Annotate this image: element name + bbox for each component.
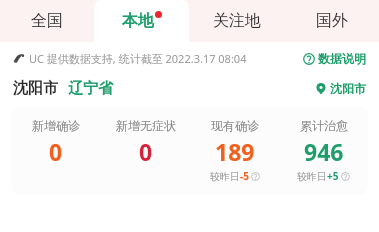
staticText: 沈阳市 — [13, 79, 58, 98]
button[interactable]: 累计治愈 — [279, 118, 368, 183]
staticText: 较昨日+5 — [297, 169, 339, 183]
button[interactable]: 全国 — [0, 0, 94, 42]
staticText: 国外 — [316, 11, 348, 31]
button[interactable]: 新增无症状 — [101, 118, 190, 180]
button[interactable]: 数据说明 — [303, 51, 366, 66]
staticText: 较昨日-5 — [210, 169, 249, 183]
staticText: 累计治愈 — [300, 118, 348, 133]
staticText: 0 — [139, 136, 153, 167]
staticText: 本地 — [122, 11, 154, 31]
staticText: 全国 — [31, 11, 63, 31]
staticText: 关注地 — [213, 11, 261, 31]
staticText: 沈阳市 — [330, 81, 366, 96]
staticText: 189 — [215, 136, 255, 167]
button[interactable]: 现有确诊 — [190, 118, 279, 183]
button[interactable]: Location — [315, 81, 366, 96]
staticText: 辽宁省 — [68, 79, 113, 98]
staticText: 新增无症状 — [116, 118, 176, 133]
staticText: 现有确诊 — [211, 118, 259, 133]
staticText: 新增确诊 — [32, 118, 80, 133]
other: UC logo — [13, 52, 26, 65]
other: Location — [315, 83, 327, 95]
button[interactable]: 辽宁省 — [68, 79, 113, 98]
staticText: 946 — [304, 136, 344, 167]
button[interactable]: 新增确诊 — [11, 118, 101, 180]
button[interactable]: 关注地 — [189, 0, 284, 42]
staticText: UC 提供数据支持, 统计截至 2022.3.17 08:04 — [29, 51, 247, 66]
staticText: 0 — [49, 136, 63, 167]
staticText: 数据说明 — [318, 51, 366, 66]
button[interactable]: 本地 — [94, 0, 189, 42]
button[interactable]: 国外 — [284, 0, 379, 42]
